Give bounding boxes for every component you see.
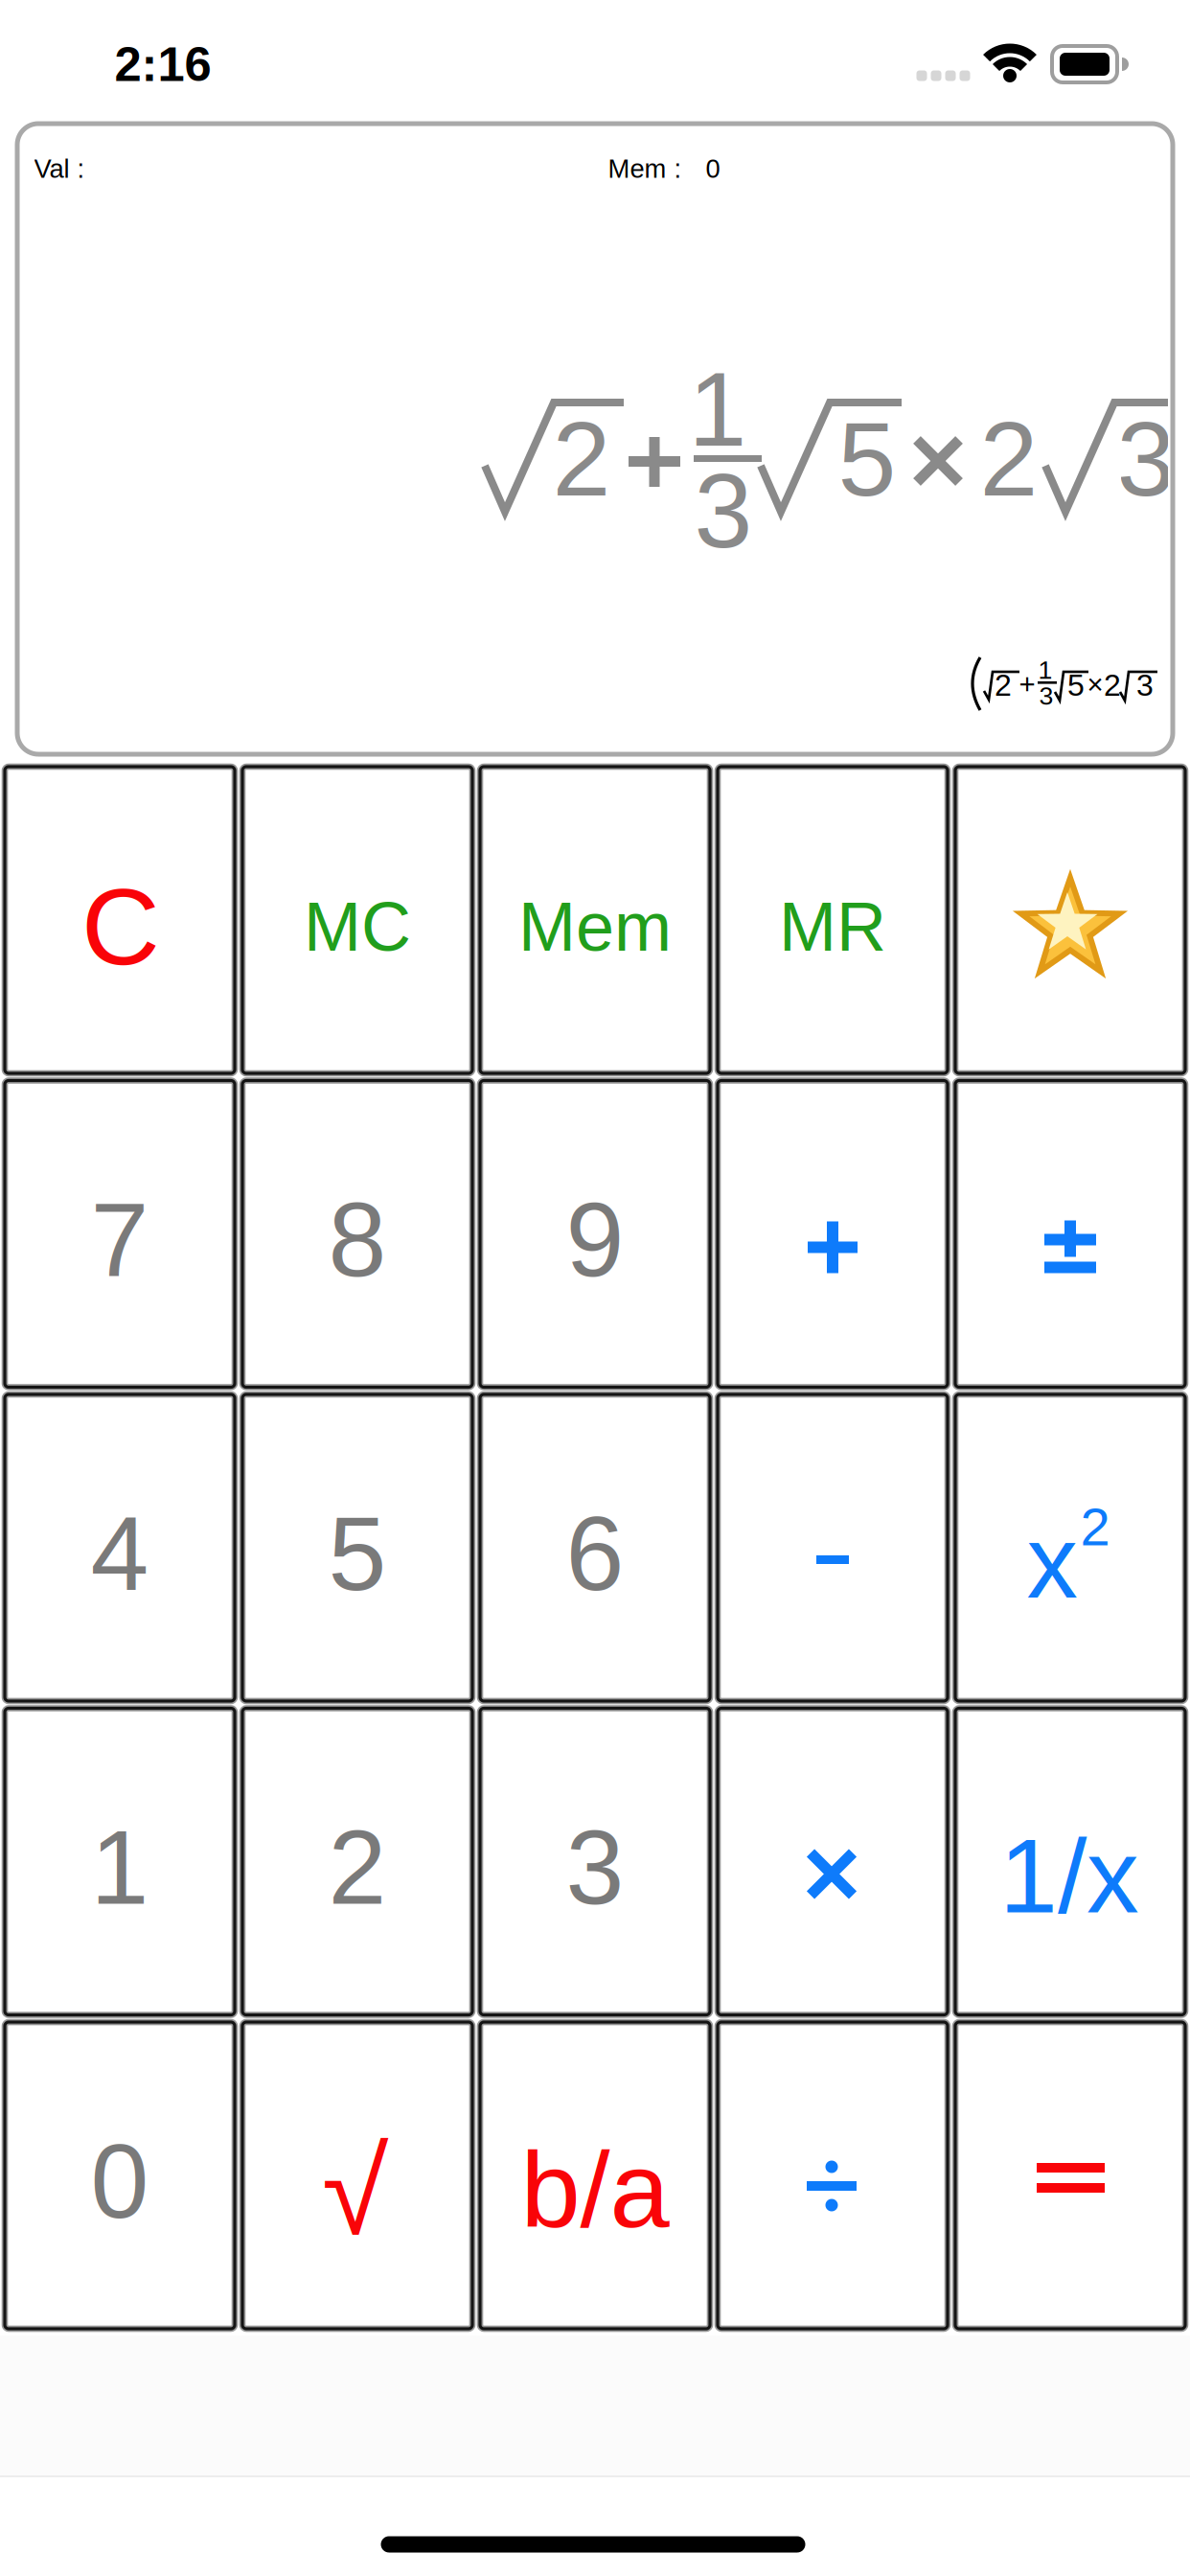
staticText: C (81, 866, 160, 987)
staticText: 2 (328, 1809, 387, 1926)
button[interactable]: Clear (5, 767, 235, 1073)
staticText: × (1087, 669, 1103, 700)
staticText: 8 (328, 1181, 387, 1298)
staticText: 2 (995, 668, 1012, 702)
staticText: 4 (91, 1495, 149, 1612)
staticText: MR (779, 888, 886, 965)
staticText: 0 (706, 154, 720, 183)
staticText: 3 (1136, 668, 1154, 702)
button[interactable]: 0 (5, 2022, 235, 2329)
button[interactable]: Multiply (718, 1708, 948, 2015)
staticText: 3 (1039, 681, 1053, 710)
staticText: 5 (838, 400, 896, 517)
button[interactable]: 3 (480, 1708, 710, 2015)
staticText: 3 (1117, 400, 1175, 517)
button[interactable]: Favorites (955, 767, 1185, 1073)
staticText: 1 (688, 351, 747, 468)
button[interactable]: Memory Recall (718, 767, 948, 1073)
staticText: MC (304, 888, 411, 965)
staticText: 3 (694, 452, 753, 569)
button[interactable]: x squared (955, 1394, 1185, 1701)
staticText: x (1027, 1505, 1077, 1619)
button[interactable]: Reciprocal (955, 1708, 1185, 2015)
staticText: + (1019, 669, 1035, 700)
staticText: 9 (566, 1181, 624, 1298)
staticText: 2:16 (114, 37, 211, 91)
staticText: 3 (566, 1809, 624, 1926)
staticText: b/a (521, 2130, 669, 2250)
staticText: 5 (1067, 668, 1085, 702)
button[interactable]: Subtract (718, 1394, 948, 1701)
button[interactable]: Memory Clear (242, 767, 472, 1073)
staticText: 2 (552, 400, 611, 517)
button[interactable]: Divide (718, 2022, 948, 2329)
staticText: 1 (91, 1809, 149, 1926)
button[interactable]: Memory (480, 767, 710, 1073)
button[interactable]: 5 (242, 1394, 472, 1701)
staticText: 5 (328, 1495, 387, 1612)
button[interactable]: 6 (480, 1394, 710, 1701)
button[interactable]: 7 (5, 1081, 235, 1387)
button[interactable]: 8 (242, 1081, 472, 1387)
staticText: √ (322, 2124, 389, 2259)
staticText: 0 (91, 2123, 149, 2240)
button[interactable]: Fraction (480, 2022, 710, 2329)
staticText: 6 (566, 1495, 624, 1612)
staticText: 7 (91, 1181, 149, 1298)
staticText: Mem : (608, 154, 682, 183)
staticText: 1 (1038, 656, 1053, 684)
button[interactable]: Equals (955, 2022, 1185, 2329)
staticText: Val : (34, 154, 85, 183)
button[interactable]: Square root (242, 2022, 472, 2329)
button[interactable]: 4 (5, 1394, 235, 1701)
button[interactable]: 9 (480, 1081, 710, 1387)
button[interactable]: Plus minus (955, 1081, 1185, 1387)
button[interactable]: 2 (242, 1708, 472, 2015)
button[interactable]: 1 (5, 1708, 235, 2015)
staticText: 1/x (999, 1817, 1139, 1934)
button[interactable]: Add (718, 1081, 948, 1387)
staticText: 2 (1104, 668, 1121, 702)
staticText: 2 (980, 400, 1038, 517)
staticText: Mem (518, 888, 672, 965)
staticText: 2 (1080, 1497, 1110, 1557)
